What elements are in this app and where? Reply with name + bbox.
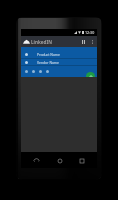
button[interactable]: Add [86, 72, 95, 81]
button[interactable]: Product Name [21, 51, 97, 58]
button[interactable]: Vendor Name [21, 59, 97, 65]
button[interactable]: Back [30, 154, 43, 167]
button[interactable]: Quick action 1 [23, 68, 30, 75]
button[interactable]: Home [53, 154, 66, 167]
staticText: LinkedIN [31, 39, 52, 45]
staticText: 12:30 [85, 30, 95, 35]
button[interactable]: Quick action 4 [44, 68, 51, 75]
button[interactable]: More options [88, 38, 96, 46]
button[interactable]: Quick action 2 [30, 68, 37, 75]
staticText: Product Name [37, 52, 60, 57]
staticText: Vendor Name [37, 60, 59, 65]
button[interactable]: Quick action 3 [37, 68, 44, 75]
button[interactable]: Pause [78, 37, 88, 47]
button[interactable]: Recents [75, 154, 88, 167]
